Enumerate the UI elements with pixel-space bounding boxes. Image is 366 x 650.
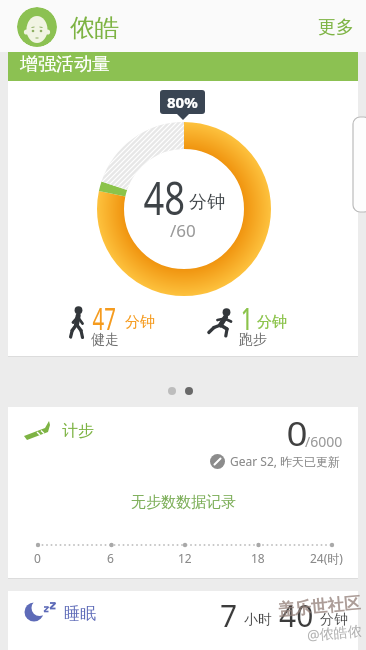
staticText: 分钟 — [257, 313, 287, 332]
staticText: 分钟 — [320, 611, 348, 629]
staticText: 6 — [107, 550, 114, 566]
staticText: /60 — [170, 219, 196, 242]
staticText: 分钟 — [189, 191, 225, 214]
staticText: /6000 — [305, 432, 343, 451]
staticText: 7 — [220, 595, 238, 636]
staticText: 睡眠 — [64, 604, 96, 624]
staticText: 跑步 — [239, 331, 267, 349]
staticText: 12 — [178, 550, 192, 566]
staticText: 40 — [279, 595, 314, 636]
staticText: 计步 — [62, 421, 94, 441]
staticText: 0 — [287, 412, 308, 456]
staticText: 更多 — [318, 16, 354, 39]
staticText: 0 — [34, 550, 41, 566]
staticText: 无步数数据记录 — [131, 493, 236, 512]
staticText: @侬皓侬 — [306, 621, 363, 644]
staticText: 1 — [241, 298, 253, 339]
staticText: 分钟 — [125, 313, 155, 332]
staticText: 18 — [251, 550, 265, 566]
staticText: 侬皓 — [70, 12, 119, 43]
button[interactable]: 侬皓 — [0, 0, 366, 52]
button[interactable]: 更多 — [318, 16, 354, 39]
staticText: 24(时) — [310, 550, 343, 566]
staticText: 盖乐世社区 — [277, 592, 362, 621]
staticText: 47 — [93, 298, 116, 339]
staticText: 增强活动量 — [20, 53, 110, 76]
staticText: 小时 — [244, 611, 272, 629]
staticText: 80% — [167, 92, 198, 112]
button[interactable]: 睡眠 — [8, 591, 358, 650]
button[interactable]: 增强活动量 — [8, 52, 358, 356]
staticText: 48 — [144, 166, 185, 229]
button[interactable]: 计步 — [8, 407, 358, 578]
staticText: 健走 — [91, 331, 119, 349]
staticText: Gear S2, 昨天已更新 — [230, 453, 341, 469]
